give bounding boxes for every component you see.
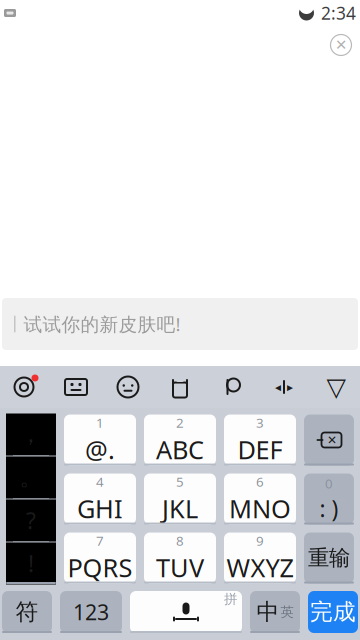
staticText: 4 bbox=[96, 473, 104, 490]
staticText: ? bbox=[26, 505, 36, 535]
staticText: 123 bbox=[73, 598, 109, 626]
button[interactable]: Keyboard width bbox=[262, 367, 306, 407]
button[interactable]: Backspace bbox=[304, 414, 354, 465]
button[interactable]: 9 bbox=[224, 532, 296, 583]
button[interactable]: 。 bbox=[6, 456, 56, 498]
button[interactable]: 5 bbox=[144, 473, 216, 524]
button[interactable]: Space, voice input bbox=[130, 591, 242, 633]
staticText: ! bbox=[28, 548, 34, 578]
button[interactable]: ? bbox=[6, 499, 56, 541]
staticText: ✕ bbox=[327, 433, 337, 447]
staticText: @. bbox=[85, 432, 115, 466]
staticText: 重输 bbox=[308, 545, 350, 571]
staticText: 拼 bbox=[224, 591, 237, 607]
staticText: MNO bbox=[229, 491, 291, 525]
staticText: : ) bbox=[319, 493, 338, 523]
staticText: PQRS bbox=[67, 550, 132, 584]
staticText: 3 bbox=[256, 414, 264, 431]
button[interactable]: 4 bbox=[64, 473, 136, 524]
staticText: 0 bbox=[325, 475, 333, 492]
button[interactable]: ! bbox=[6, 542, 56, 584]
staticText: DEF bbox=[237, 432, 282, 466]
staticText: 5 bbox=[176, 473, 184, 490]
staticText: 中 bbox=[256, 598, 279, 626]
staticText: 2:34 bbox=[321, 1, 356, 24]
staticText: GHI bbox=[77, 491, 123, 525]
button[interactable]: Emoji bbox=[106, 367, 150, 407]
staticText: 完成 bbox=[310, 598, 356, 626]
button[interactable]: Hide keyboard bbox=[314, 367, 358, 407]
button[interactable]: Skins bbox=[158, 367, 202, 407]
button[interactable]: 123 bbox=[60, 591, 122, 633]
button[interactable]: 符 bbox=[2, 591, 52, 633]
staticText: 英 bbox=[280, 604, 293, 620]
button[interactable]: 7 bbox=[64, 532, 136, 583]
button[interactable]: 完成 bbox=[308, 591, 358, 633]
staticText: JKL bbox=[162, 491, 198, 525]
staticText: 9 bbox=[256, 532, 264, 549]
button[interactable]: 6 bbox=[224, 473, 296, 524]
staticText: ✕ bbox=[335, 37, 347, 53]
staticText: WXYZ bbox=[226, 550, 293, 584]
button[interactable]: 重输 bbox=[304, 532, 354, 583]
staticText: 1 bbox=[96, 414, 104, 431]
button[interactable]: 3 bbox=[224, 414, 296, 465]
button[interactable]: ， bbox=[6, 413, 56, 455]
button[interactable]: 1 bbox=[64, 414, 136, 465]
button[interactable]: 中 bbox=[250, 591, 300, 633]
button[interactable]: Close bbox=[324, 28, 358, 62]
staticText: 6 bbox=[256, 473, 264, 490]
staticText: TUV bbox=[156, 550, 204, 584]
staticText: 试试你的新皮肤吧! bbox=[23, 312, 180, 336]
staticText: ABC bbox=[156, 432, 204, 466]
button[interactable]: Handwriting bbox=[210, 367, 254, 407]
button[interactable]: Settings bbox=[2, 367, 46, 407]
staticText: 符 bbox=[15, 598, 38, 626]
button[interactable]: 8 bbox=[144, 532, 216, 583]
staticText: 8 bbox=[176, 532, 184, 549]
staticText: 7 bbox=[96, 532, 104, 549]
staticText: 2 bbox=[176, 414, 184, 431]
staticText: ◂ bbox=[275, 380, 281, 394]
staticText: ▸ bbox=[287, 380, 293, 394]
staticText: ▽ bbox=[326, 373, 345, 401]
button[interactable]: 0 bbox=[304, 473, 354, 524]
button[interactable]: 2 bbox=[144, 414, 216, 465]
button[interactable]: Keyboard bbox=[54, 367, 98, 407]
